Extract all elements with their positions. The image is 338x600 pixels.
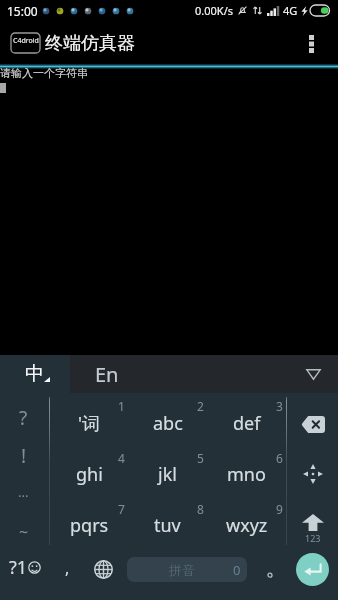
staticText: 0 bbox=[233, 561, 241, 579]
staticText: def bbox=[233, 411, 261, 436]
staticText: C4droid bbox=[13, 36, 39, 46]
staticText: pqrs bbox=[70, 513, 109, 538]
staticText: 2 bbox=[197, 398, 204, 414]
staticText: ghi bbox=[76, 462, 103, 487]
button[interactable]: , bbox=[49, 547, 85, 600]
staticText: 1 bbox=[118, 398, 125, 414]
staticText: 9 bbox=[276, 501, 283, 517]
button[interactable]: Switch input language bbox=[0, 355, 70, 393]
staticText: 7 bbox=[118, 501, 125, 517]
button[interactable]: C4droid bbox=[11, 33, 40, 53]
staticText: 拼音 bbox=[169, 562, 195, 578]
button[interactable]: More options bbox=[299, 22, 323, 66]
button[interactable]: ··· bbox=[0, 469, 49, 508]
staticText: 中 bbox=[25, 362, 44, 386]
button[interactable]: Shift and numbers bbox=[287, 496, 338, 547]
button[interactable]: 8 bbox=[128, 496, 207, 547]
button[interactable]: 拼音 bbox=[127, 557, 247, 582]
button[interactable]: 1 bbox=[50, 393, 128, 445]
staticText: ~ bbox=[19, 521, 29, 543]
staticText: tuv bbox=[154, 513, 181, 538]
staticText: 4G bbox=[283, 3, 298, 18]
staticText: wxyz bbox=[226, 513, 268, 538]
staticText: jkl bbox=[158, 462, 177, 487]
button[interactable]: Move cursor bbox=[287, 445, 338, 496]
button[interactable]: 7 bbox=[50, 496, 128, 547]
staticText: '词 bbox=[78, 411, 101, 436]
staticText: 123 bbox=[305, 532, 321, 544]
button[interactable]: ~ bbox=[0, 508, 49, 547]
staticText: ?1 bbox=[9, 555, 28, 580]
button[interactable]: ? bbox=[0, 393, 49, 431]
staticText: abc bbox=[153, 411, 183, 436]
staticText: 8 bbox=[197, 501, 204, 517]
staticText: , bbox=[65, 557, 70, 579]
staticText: 终端仿真器 bbox=[45, 32, 135, 55]
button[interactable]: Switch language bbox=[85, 547, 123, 600]
staticText: 4 bbox=[118, 450, 125, 466]
button[interactable]: Hide keyboard bbox=[301, 362, 325, 386]
button[interactable]: 5 bbox=[128, 445, 207, 496]
staticText: mno bbox=[227, 462, 266, 487]
button[interactable]: 9 bbox=[207, 496, 286, 547]
button[interactable]: Enter bbox=[284, 547, 338, 600]
staticText: ··· bbox=[18, 487, 29, 505]
staticText: 5 bbox=[197, 450, 204, 466]
staticText: 3 bbox=[276, 398, 283, 414]
button[interactable]: ! bbox=[0, 431, 49, 469]
button[interactable]: 4 bbox=[50, 445, 128, 496]
button[interactable]: ?1 bbox=[0, 547, 49, 600]
button[interactable]: 6 bbox=[207, 445, 286, 496]
staticText: En bbox=[95, 361, 119, 388]
staticText: 15:00 bbox=[7, 3, 38, 19]
staticText: 6 bbox=[276, 450, 283, 466]
staticText: ? bbox=[19, 405, 28, 431]
staticText: 请输入一个字符串 bbox=[0, 66, 88, 80]
button[interactable]: Backspace bbox=[287, 393, 338, 445]
button[interactable]: 3 bbox=[207, 393, 286, 445]
staticText: 0.00K/s bbox=[195, 3, 233, 18]
staticText: ! bbox=[21, 443, 27, 469]
button[interactable] bbox=[256, 547, 284, 600]
button[interactable]: 2 bbox=[128, 393, 207, 445]
